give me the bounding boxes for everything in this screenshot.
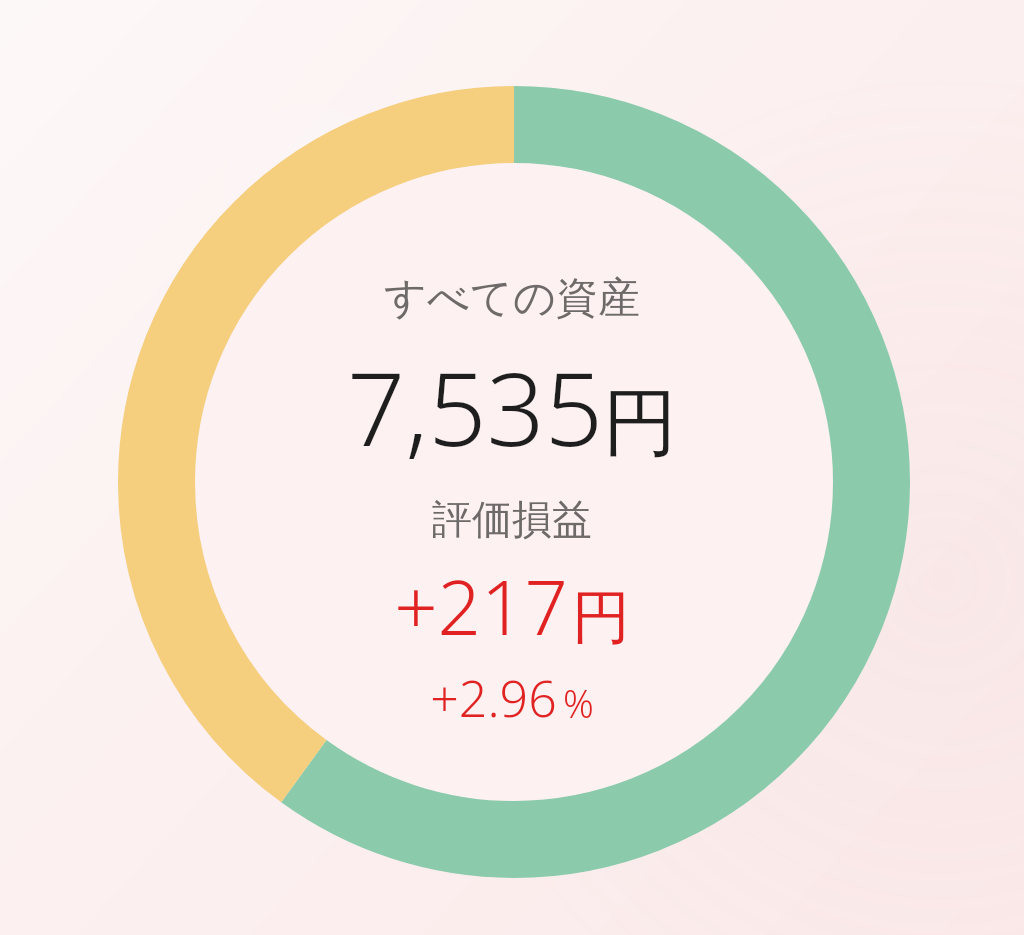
staticText: % (563, 677, 594, 729)
staticText: 円 (603, 377, 677, 470)
staticText: +217 (394, 554, 568, 658)
button[interactable]: Asset allocation donut chart (0, 0, 1024, 935)
staticText: 評価損益 (432, 494, 592, 544)
staticText: すべての資産 (384, 272, 640, 325)
staticText: 円 (572, 581, 630, 654)
staticText: 7,535 (347, 337, 603, 476)
button[interactable]: すべての資産 (0, 0, 1024, 935)
staticText: +2.96 (430, 664, 557, 732)
